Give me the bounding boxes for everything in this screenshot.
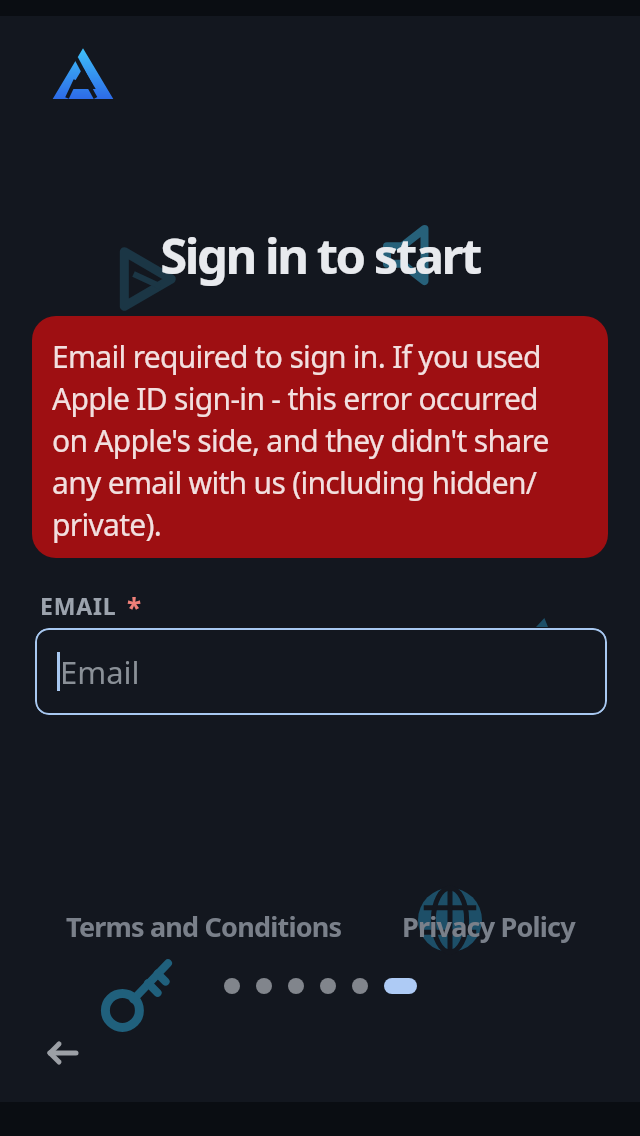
staticText: EMAIL	[40, 590, 117, 621]
button[interactable]: Privacy Policy	[402, 908, 575, 945]
button[interactable]	[46, 1040, 80, 1066]
staticText: on Apple's side, and they didn't share	[52, 420, 549, 462]
staticText: any email with us (including hidden/	[52, 462, 537, 504]
staticText: Sign in to start	[0, 222, 640, 289]
button[interactable]	[56, 48, 108, 98]
button[interactable]: Email	[35, 628, 607, 715]
staticText: Email required to sign in. If you used	[52, 336, 541, 378]
button[interactable]: Terms and Conditions	[66, 908, 342, 945]
staticText: private).	[52, 504, 162, 546]
staticText: *	[127, 590, 142, 625]
staticText: Email	[60, 651, 140, 693]
staticText: Apple ID sign-in - this error occurred	[52, 378, 538, 420]
